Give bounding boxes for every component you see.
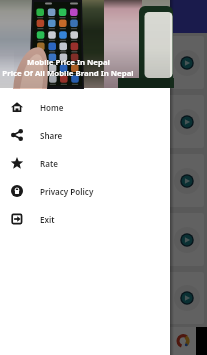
staticText: Rate [40,158,58,169]
button[interactable]: Rate [0,149,170,177]
staticText: Home [40,102,64,113]
button[interactable]: Home [0,93,170,121]
staticText: Exit [40,214,55,225]
button[interactable]: Exit [0,205,170,233]
staticText: Price Of All Mobile Brand In Nepal [2,68,134,79]
button[interactable] [3,36,204,89]
button[interactable] [3,95,204,148]
staticText: Mobile Price In Nepal [27,57,110,68]
staticText: Privacy Policy [40,186,94,197]
button[interactable]: Share [0,121,170,149]
button[interactable] [0,0,207,33]
button[interactable] [3,272,204,324]
button[interactable]: Privacy Policy [0,177,170,205]
staticText: Share [40,130,63,141]
button[interactable] [3,213,204,266]
button[interactable] [3,154,204,207]
